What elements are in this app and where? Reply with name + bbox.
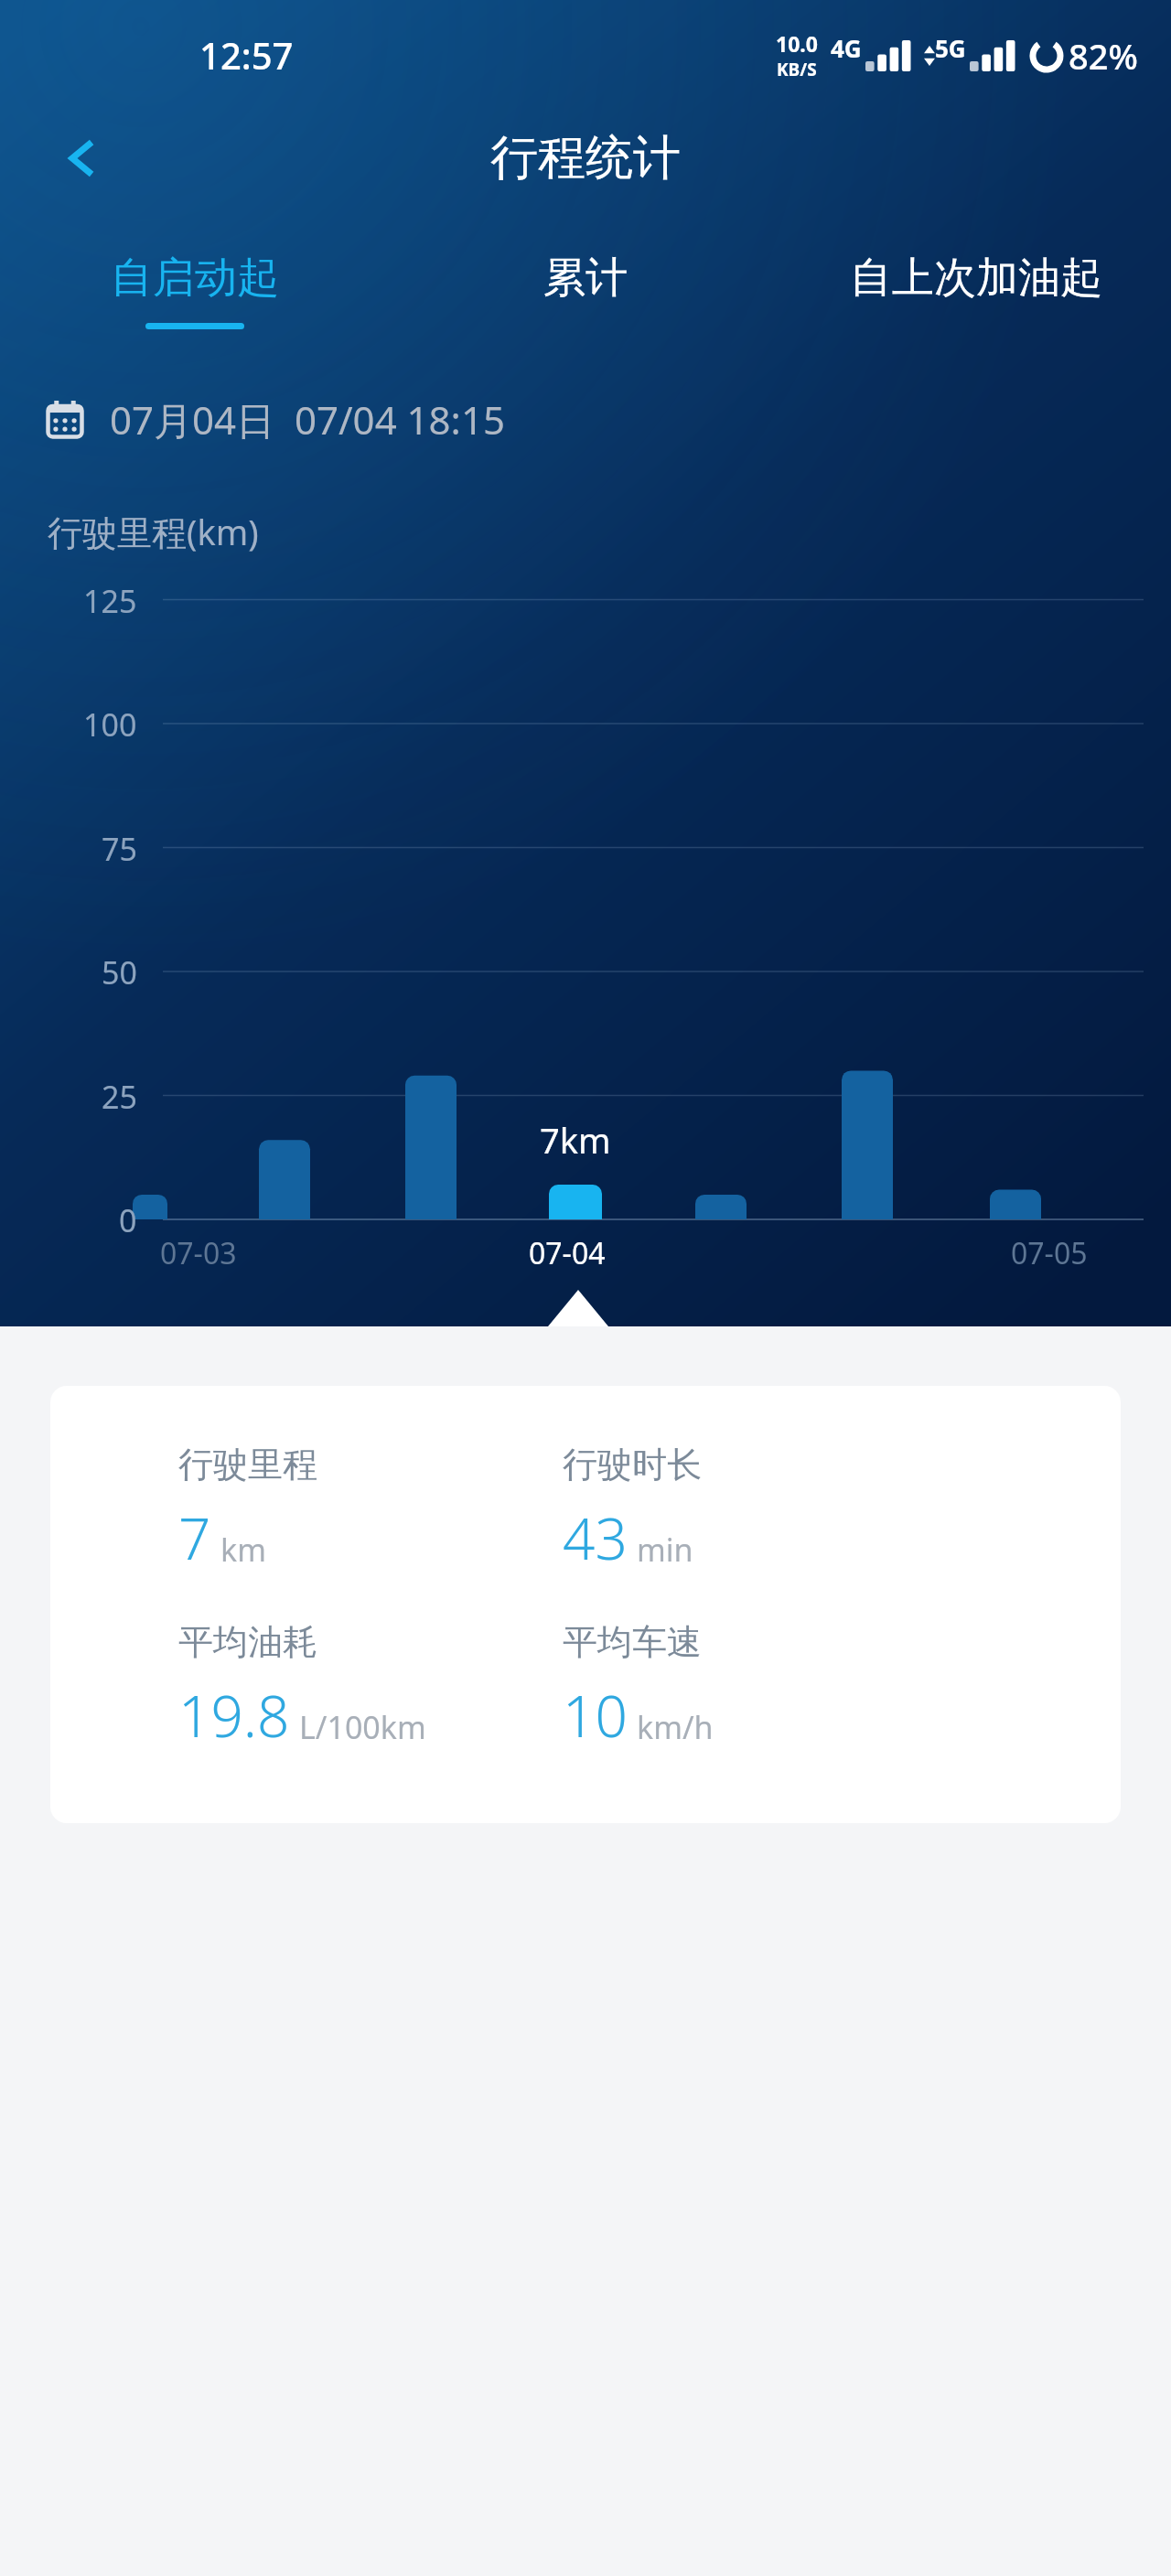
staticText: km (220, 1529, 266, 1571)
staticText: 50 (102, 951, 137, 993)
staticText: 07-05 (1011, 1233, 1088, 1273)
staticText: 10.0 (776, 29, 818, 58)
staticText: 自上次加油起 (850, 252, 1102, 305)
staticText: 125 (83, 580, 137, 622)
staticText: 行驶时长 (563, 1443, 702, 1487)
staticText: 行程统计 (490, 128, 681, 188)
staticText: 平均油耗 (178, 1620, 317, 1664)
button[interactable]: 行驶里程 (50, 1386, 1121, 1823)
staticText: 100 (83, 703, 137, 746)
staticText: 82% (1069, 32, 1138, 80)
button[interactable]: 自上次加油起 (780, 252, 1171, 361)
staticText: 07-03 (160, 1233, 237, 1273)
staticText: 75 (102, 828, 137, 870)
staticText: 平均车速 (563, 1620, 702, 1664)
staticText: km/h (637, 1706, 714, 1748)
staticText: L/100km (299, 1706, 426, 1748)
button[interactable]: Back (46, 122, 119, 195)
staticText: 5G (935, 32, 966, 64)
staticText: 7 (178, 1499, 211, 1576)
staticText: 行驶里程(km) (48, 508, 259, 555)
staticText: 4G (831, 32, 862, 64)
staticText: 07-04 (529, 1233, 606, 1273)
staticText: 43 (563, 1499, 628, 1576)
staticText: KB/S (777, 58, 817, 81)
staticText: 自启动起 (111, 252, 279, 305)
staticText: 12:57 (199, 30, 294, 80)
staticText: 累计 (543, 252, 628, 305)
staticText: min (637, 1529, 693, 1571)
staticText: 0 (119, 1199, 137, 1241)
staticText: 7km (540, 1116, 611, 1164)
staticText: 行驶里程 (178, 1443, 317, 1487)
staticText: 10 (563, 1677, 628, 1754)
staticText: 25 (102, 1076, 137, 1118)
button[interactable]: 累计 (390, 252, 780, 361)
staticText: 07月04日 07/04 18:15 (110, 393, 505, 445)
staticText: 19.8 (178, 1677, 290, 1754)
button[interactable]: 自启动起 (0, 252, 390, 361)
